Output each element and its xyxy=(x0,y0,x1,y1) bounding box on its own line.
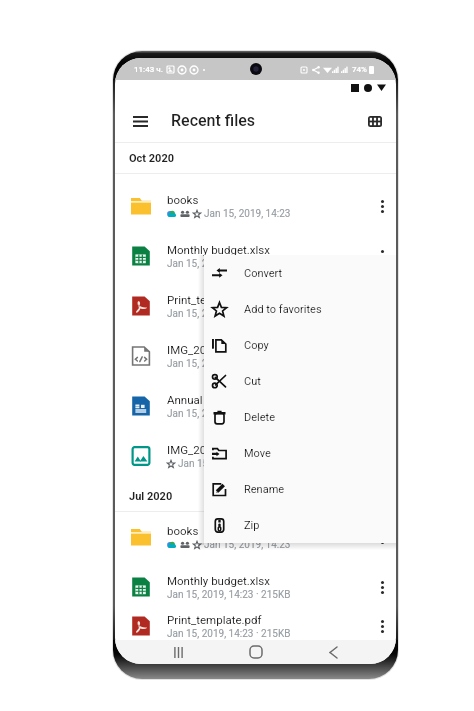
button[interactable]: Switch to grid view xyxy=(360,106,390,136)
button[interactable]: Print_template.pdf xyxy=(115,612,396,640)
button[interactable]: books xyxy=(115,512,396,562)
staticText: Convert xyxy=(244,267,283,280)
staticText: Delete xyxy=(244,411,275,424)
staticText: Print_template.pdf xyxy=(167,293,262,306)
staticText: Add to favorites xyxy=(244,303,322,316)
button[interactable]: Cut xyxy=(204,363,396,399)
button[interactable]: Monthly budget.xlsx xyxy=(115,231,396,281)
button[interactable]: books xyxy=(115,181,396,231)
staticText: books xyxy=(167,193,199,206)
staticText: Recent files xyxy=(171,111,256,130)
staticText: Annual report.docx xyxy=(167,393,265,406)
button[interactable]: IMG_20190115_142312.jpg xyxy=(115,431,396,481)
button[interactable]: Convert xyxy=(204,255,396,291)
staticText: Jan 15, 2019, 14:23 xyxy=(204,208,291,220)
staticText: Jan 15, 2019, 14:23 · 215KB xyxy=(167,408,291,420)
staticText: Cut xyxy=(244,375,261,388)
staticText: Zip xyxy=(244,519,260,532)
staticText: IMG_20190115_142312.jpg xyxy=(167,343,308,356)
button[interactable]: Home xyxy=(242,640,270,664)
staticText: Jan 15, 2019, 14:23 · 215KB xyxy=(167,308,291,320)
staticText: Jan 15, 2019, 14:23 xyxy=(204,539,291,551)
staticText: 74% xyxy=(352,65,367,74)
staticText: 11:43 ч. xyxy=(134,65,163,74)
button[interactable]: IMG_20190115_142312.jpg xyxy=(115,331,396,381)
staticText: Monthly budget.xlsx xyxy=(167,574,270,587)
staticText: IMG_20190115_142312.jpg xyxy=(167,443,308,456)
staticText: Oct 2020 xyxy=(129,152,175,165)
staticText: Monthly budget.xlsx xyxy=(167,243,270,256)
staticText: Jan 15, 2019, 14:23 xyxy=(178,458,265,470)
button[interactable]: Print_template.pdf xyxy=(115,281,396,331)
button[interactable]: More options xyxy=(368,612,396,640)
button[interactable]: Move xyxy=(204,435,396,471)
staticText: Rename xyxy=(244,483,285,496)
staticText: Copy xyxy=(244,339,269,352)
staticText: Print_template.pdf xyxy=(167,613,262,626)
button[interactable]: Monthly budget.xlsx xyxy=(115,562,396,612)
button[interactable]: Add to favorites xyxy=(204,291,396,327)
button[interactable]: Zip xyxy=(204,507,396,543)
button[interactable]: Rename xyxy=(204,471,396,507)
button[interactable]: Delete xyxy=(204,399,396,435)
staticText: books xyxy=(167,524,199,537)
staticText: Jan 15, 2019, 14:23 · 215KB xyxy=(167,358,291,370)
staticText: Jan 15, 2019, 14:23 · 215KB xyxy=(167,589,291,601)
staticText: Jan 15, 2019, 14:23 · 215KB xyxy=(167,258,291,270)
button[interactable]: More options xyxy=(368,231,396,281)
button[interactable]: More options xyxy=(368,512,396,562)
button[interactable]: More options xyxy=(368,181,396,231)
staticText: Move xyxy=(244,447,271,460)
button[interactable]: Recent apps xyxy=(164,640,192,664)
button[interactable]: More options xyxy=(368,562,396,612)
staticText: Jul 2020 xyxy=(129,490,173,503)
button[interactable]: Open navigation menu xyxy=(125,106,155,136)
button[interactable]: Copy xyxy=(204,327,396,363)
button[interactable]: Back xyxy=(319,640,347,664)
staticText: Jan 15, 2019, 14:23 · 215KB xyxy=(167,628,291,640)
button[interactable]: Annual report.docx xyxy=(115,381,396,431)
